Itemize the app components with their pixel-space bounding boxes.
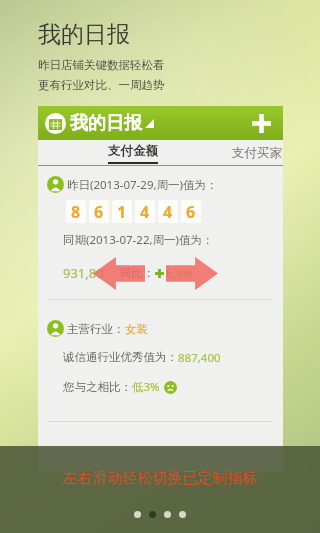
staticText: 4: [140, 201, 150, 223]
staticText: 6: [94, 201, 104, 223]
staticText: 女装: [125, 322, 148, 336]
staticText: 4: [163, 201, 173, 223]
staticText: 887,400: [178, 350, 221, 366]
staticText: 1: [117, 201, 127, 223]
button[interactable]: [134, 511, 141, 518]
staticText: 同期(2013-07-22,周一)值为：: [63, 232, 214, 248]
button[interactable]: Add indicator: [243, 106, 279, 140]
staticText: 我的日报: [38, 20, 130, 49]
button[interactable]: [149, 511, 156, 518]
staticText: 左右滑动轻松切换已定制指标: [0, 469, 320, 488]
staticText: 昨日店铺关键数据轻松看: [38, 58, 165, 72]
button[interactable]: 支付买家: [232, 145, 282, 161]
button[interactable]: [164, 511, 171, 518]
staticText: 昨日(2013-07-29,周一)值为：: [67, 177, 218, 193]
staticText: 主营行业：: [67, 322, 125, 336]
button[interactable]: [179, 511, 186, 518]
staticText: 931,80: [63, 264, 104, 282]
button[interactable]: 我的日报: [38, 106, 283, 140]
staticText: 更有行业对比、一周趋势: [38, 78, 165, 92]
staticText: 6: [186, 201, 196, 223]
staticText: 6.8%: [166, 265, 193, 281]
button[interactable]: 支付金额: [108, 143, 158, 164]
staticText: 8: [71, 201, 81, 223]
staticText: 我的日报: [70, 112, 142, 135]
staticText: 支付买家: [232, 145, 282, 161]
staticText: 同比：: [120, 266, 155, 280]
staticText: 低3%: [132, 379, 160, 395]
staticText: 诚信通行业优秀值为：: [63, 350, 178, 364]
staticText: 您与之相比：: [63, 380, 132, 394]
staticText: 支付金额: [108, 143, 158, 159]
